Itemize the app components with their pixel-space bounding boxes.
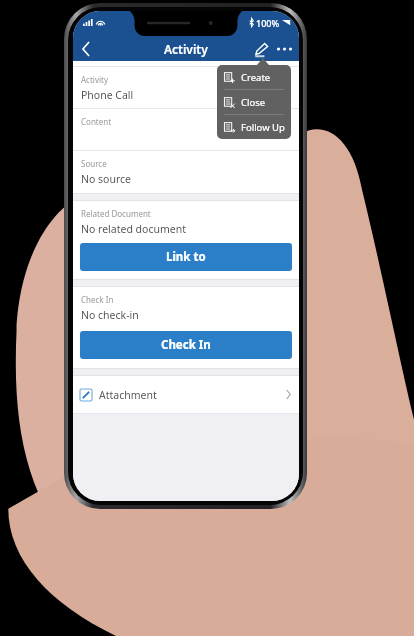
staticText: Close (241, 96, 266, 109)
staticText: Phone Call (81, 88, 134, 102)
button[interactable]: Follow Up (217, 115, 291, 139)
button[interactable]: Back (73, 36, 99, 61)
staticText: Create (241, 71, 271, 84)
staticText: No related document (81, 222, 186, 236)
staticText: No check-in (81, 308, 139, 322)
staticText: Follow Up (241, 121, 285, 134)
button[interactable]: Edit (251, 39, 271, 59)
staticText: No source (81, 172, 132, 186)
button[interactable]: Create (217, 65, 291, 89)
button[interactable]: Content (73, 109, 299, 150)
button[interactable]: More options (274, 39, 294, 59)
button[interactable]: Check In (80, 331, 292, 359)
staticText: Link to (166, 249, 206, 265)
button[interactable]: Attachment (73, 376, 299, 413)
staticText: Check In (81, 294, 114, 305)
staticText: Check In (161, 337, 211, 353)
staticText: Activity (81, 74, 108, 85)
staticText: Content (81, 116, 112, 127)
staticText: Attachment (99, 388, 157, 402)
staticText: 100% (256, 17, 280, 29)
button[interactable]: Close (217, 90, 291, 114)
button[interactable]: Check In (73, 287, 299, 331)
button[interactable]: Activity (73, 67, 299, 108)
staticText: Source (81, 158, 107, 169)
button[interactable]: Related Document (73, 201, 299, 243)
button[interactable]: Source (73, 151, 299, 193)
staticText: Related Document (81, 208, 151, 219)
button[interactable]: Link to (80, 243, 292, 271)
staticText: Activity (164, 41, 208, 57)
